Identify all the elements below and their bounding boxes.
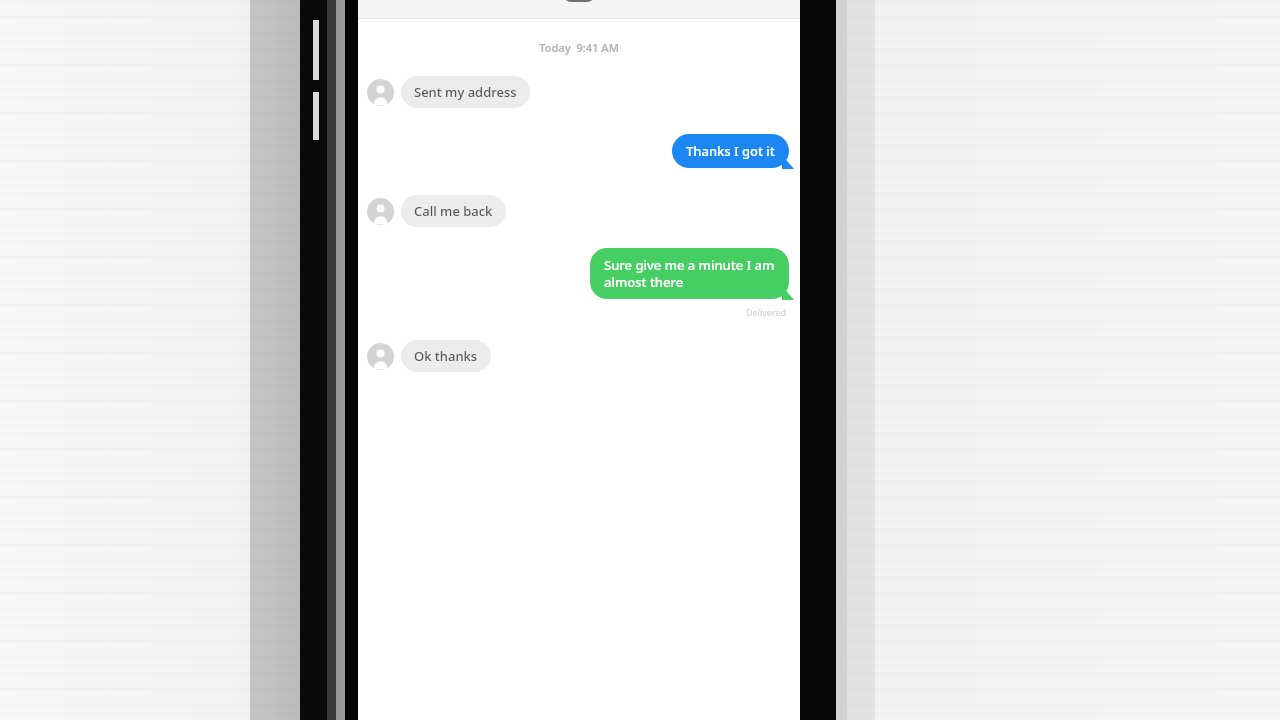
button[interactable]: Contact avatar [367,340,764,372]
staticText: Ok thanks [414,347,478,365]
button[interactable]: Conversation header [358,0,800,19]
other: Contact avatar [367,198,394,225]
button[interactable]: Contact avatar [367,195,764,227]
other: Contact avatar [367,343,394,370]
other: Contact avatar [367,79,394,106]
staticText: Sent my address [414,83,517,101]
staticText: Thanks I got it [686,142,775,160]
staticText: Today 9:41 AM [358,40,800,55]
staticText: Call me back [414,202,493,220]
button[interactable]: Contact avatar [367,76,764,108]
button[interactable]: Sure give me a minute I am almost there [358,248,789,299]
button[interactable]: Thanks I got it [358,134,789,168]
staticText: Delivered [358,306,786,318]
staticText: Sure give me a minute I am almost there [604,256,775,291]
